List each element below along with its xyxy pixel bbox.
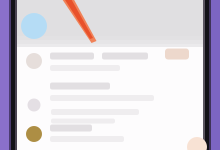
button[interactable]: Message from Ben Ortiz [0,0,220,150]
button[interactable]: Message from Anna Clark [0,0,220,150]
button[interactable]: Message from Cleo Ruiz [0,0,220,150]
